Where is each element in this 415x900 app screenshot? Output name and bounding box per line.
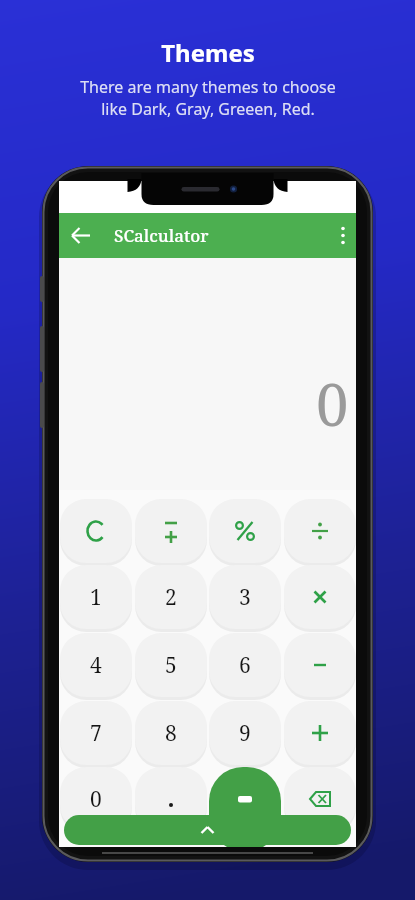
staticText: 2 <box>165 583 177 612</box>
button[interactable]: 4 <box>60 633 132 697</box>
button[interactable]: More options <box>330 217 354 255</box>
button[interactable]: Divide <box>284 499 356 563</box>
staticText: 9 <box>239 719 251 748</box>
button[interactable]: 1 <box>60 565 132 629</box>
staticText: SCalculator <box>114 224 209 247</box>
staticText: 7 <box>90 719 102 748</box>
button[interactable]: 2 <box>135 565 207 629</box>
button[interactable]: Clear <box>60 499 132 563</box>
staticText: There are many themes to choose like Dar… <box>80 76 336 120</box>
button[interactable]: Add <box>284 701 356 765</box>
button[interactable]: 3 <box>209 565 281 629</box>
button[interactable]: Equals <box>209 767 281 831</box>
button[interactable]: Expand <box>64 815 351 845</box>
staticText: 0 <box>90 785 102 814</box>
staticText: 6 <box>239 651 251 680</box>
staticText: 5 <box>165 651 177 680</box>
button[interactable]: 9 <box>209 701 281 765</box>
button[interactable]: Multiply <box>284 565 356 629</box>
button[interactable]: Subtract <box>284 633 356 697</box>
staticText: 4 <box>90 651 102 680</box>
staticText: 1 <box>90 583 102 612</box>
button[interactable]: 6 <box>209 633 281 697</box>
staticText: 8 <box>165 719 177 748</box>
button[interactable]: Decimal point <box>135 767 207 831</box>
button[interactable]: 5 <box>135 633 207 697</box>
button[interactable]: 7 <box>60 701 132 765</box>
button[interactable]: Back <box>63 217 101 255</box>
button[interactable]: Plus minus <box>135 499 207 563</box>
button[interactable]: 8 <box>135 701 207 765</box>
button[interactable]: 0 <box>60 767 132 831</box>
staticText: 3 <box>239 583 251 612</box>
button[interactable]: Backspace <box>284 767 356 831</box>
staticText: Themes <box>161 36 255 69</box>
staticText: 0 <box>316 364 349 428</box>
button[interactable]: Percent <box>209 499 281 563</box>
